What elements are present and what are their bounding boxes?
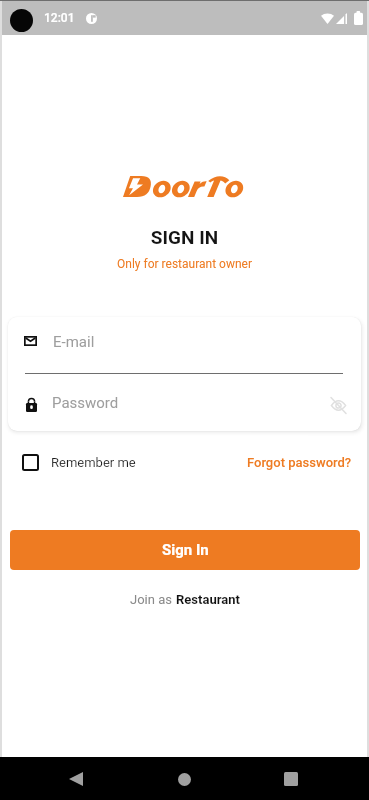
staticText: Sign In	[162, 541, 209, 559]
staticText: Remember me	[51, 455, 136, 470]
staticText: Join as	[130, 592, 176, 607]
staticText: 12:01	[44, 11, 75, 25]
staticText: Password	[52, 394, 119, 412]
button[interactable]: Recent apps	[271, 759, 311, 799]
button[interactable]: Back	[56, 759, 96, 799]
button[interactable]: Home	[164, 759, 204, 799]
button[interactable]: Show password	[327, 392, 349, 414]
button[interactable]: Sign In	[10, 530, 360, 570]
button[interactable]: Password	[8, 374, 361, 431]
staticText: E-mail	[53, 333, 95, 351]
staticText: Forgot password?	[247, 455, 352, 470]
staticText: Only for restaurant owner	[0, 257, 369, 271]
button[interactable]: E-mail	[8, 317, 361, 366]
button[interactable]: Forgot password?	[247, 455, 352, 470]
staticText: SIGN IN	[0, 226, 369, 248]
button[interactable]: Remember me	[22, 454, 136, 471]
staticText: Restaurant	[176, 592, 240, 607]
button[interactable]: Restaurant	[176, 592, 240, 607]
